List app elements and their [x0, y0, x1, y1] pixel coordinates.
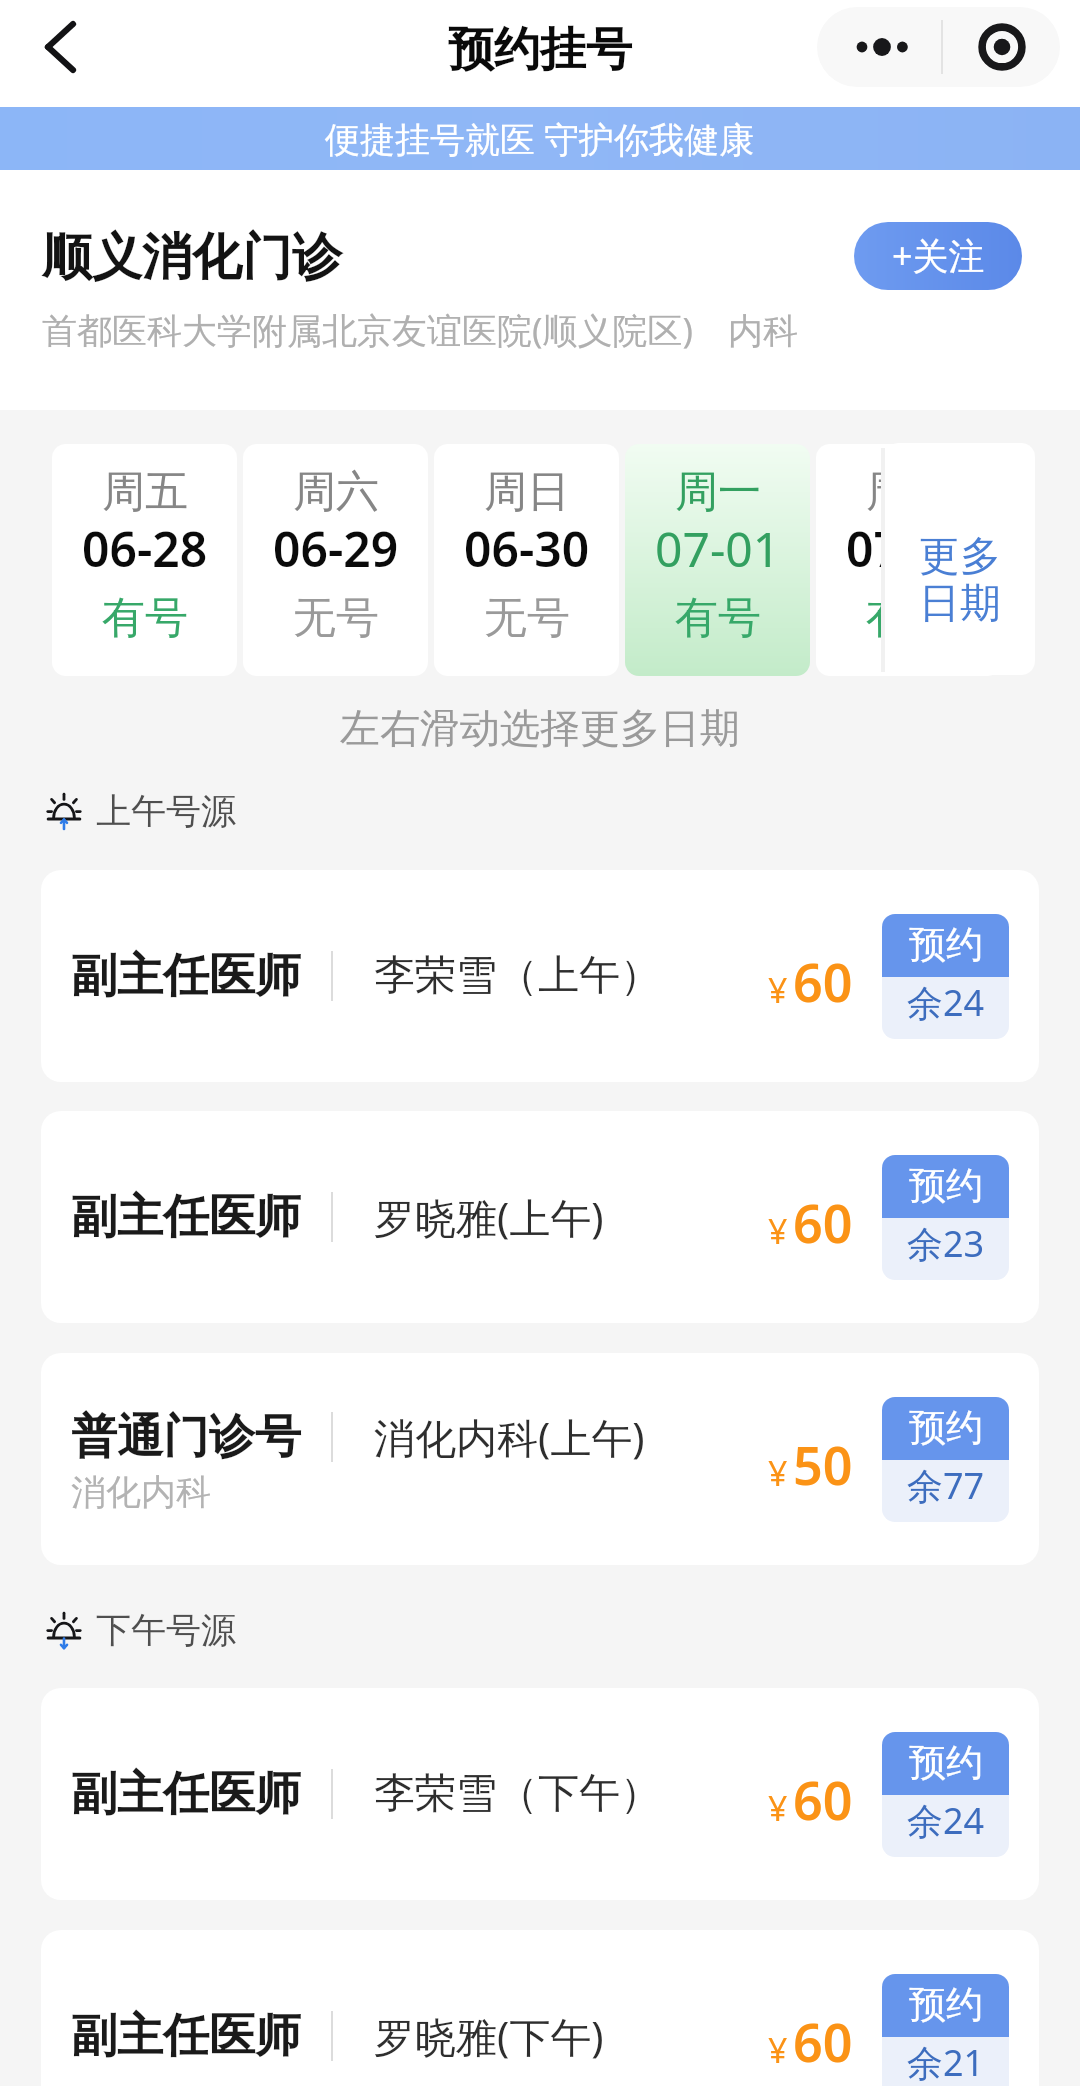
button[interactable]: 周二 [816, 444, 1001, 676]
button[interactable]: 预约 [882, 1155, 1009, 1280]
staticText: 李荣雪（下午） [374, 1768, 661, 1820]
staticText: 周一 [675, 465, 761, 519]
staticText: 罗晓雅(下午) [374, 2008, 604, 2064]
staticText: 预约 [909, 921, 983, 968]
button[interactable]: More options [817, 7, 941, 87]
staticText: 60 [793, 2006, 853, 2077]
button[interactable]: 周五 [52, 444, 237, 676]
staticText: 无号 [484, 591, 570, 645]
staticText: 余21 [907, 2038, 985, 2086]
button[interactable]: 副主任医师 [41, 870, 1039, 1082]
staticText: ¥ [768, 1785, 788, 1831]
staticText: 预约 [909, 1981, 983, 2028]
button[interactable]: +关注 [854, 222, 1022, 290]
button[interactable]: Close mini program [943, 7, 1060, 87]
staticText: 06-30 [464, 516, 590, 581]
button[interactable]: 周六 [243, 444, 428, 676]
staticText: +关注 [892, 231, 985, 280]
staticText: 更多 日期 [919, 531, 1001, 629]
staticText: 07-02 [846, 516, 972, 581]
staticText: 顺义消化门诊 [42, 226, 342, 289]
staticText: ¥ [768, 967, 788, 1013]
staticText: 余77 [907, 1461, 985, 1510]
staticText: 副主任医师 [71, 2007, 301, 2065]
staticText: 60 [793, 1187, 853, 1258]
button[interactable]: 预约 [882, 1397, 1009, 1522]
staticText: 罗晓雅(上午) [374, 1189, 604, 1245]
staticText: 左右滑动选择更多日期 [0, 703, 1080, 753]
staticText: 06-29 [273, 516, 399, 581]
staticText: 预约 [909, 1162, 983, 1209]
staticText: 有号 [675, 591, 761, 645]
staticText: 下午号源 [96, 1608, 236, 1652]
staticText: 07-01 [655, 516, 781, 581]
staticText: 消化内科 [71, 1470, 211, 1514]
staticText: 周六 [293, 465, 379, 519]
staticText: 60 [793, 946, 853, 1017]
staticText: 副主任医师 [71, 1765, 301, 1823]
staticText: 消化内科(上午) [374, 1409, 645, 1465]
staticText: 有号 [102, 591, 188, 645]
staticText: 预约 [909, 1739, 983, 1786]
staticText: 普通门诊号 [71, 1408, 301, 1466]
staticText: 副主任医师 [71, 947, 301, 1005]
button[interactable]: 更多 日期 [885, 443, 1035, 675]
staticText: ¥ [768, 1450, 788, 1496]
staticText: ¥ [768, 2027, 788, 2073]
staticText: ¥ [768, 1208, 788, 1254]
staticText: 首都医科大学附属北京友谊医院(顺义院区) 内科 [42, 306, 798, 354]
button[interactable]: Back [24, 11, 96, 83]
button[interactable]: 预约 [882, 1974, 1009, 2086]
button[interactable]: 副主任医师 [41, 1688, 1039, 1900]
button[interactable]: 副主任医师 [41, 1930, 1039, 2086]
staticText: 预约挂号 [448, 21, 632, 79]
button[interactable]: 周日 [434, 444, 619, 676]
staticText: 李荣雪（上午） [374, 950, 661, 1002]
staticText: 副主任医师 [71, 1188, 301, 1246]
button[interactable]: 副主任医师 [41, 1111, 1039, 1323]
button[interactable]: 周一 [625, 444, 810, 676]
staticText: 便捷挂号就医 守护你我健康 [325, 115, 755, 163]
staticText: 周五 [102, 465, 188, 519]
staticText: 周日 [484, 465, 570, 519]
staticText: 50 [793, 1429, 853, 1500]
staticText: 预约 [909, 1404, 983, 1451]
staticText: 无号 [293, 591, 379, 645]
staticText: 余24 [907, 978, 985, 1027]
staticText: 余24 [907, 1796, 985, 1845]
staticText: 60 [793, 1764, 853, 1835]
staticText: 上午号源 [96, 789, 236, 833]
staticText: 06-28 [82, 516, 208, 581]
button[interactable]: 预约 [882, 1732, 1009, 1857]
staticText: 周二 [866, 465, 952, 519]
button[interactable]: 预约 [882, 914, 1009, 1039]
staticText: 余23 [907, 1219, 985, 1268]
button[interactable]: 消化内科 [41, 1353, 1039, 1565]
staticText: 有号 [866, 591, 952, 645]
